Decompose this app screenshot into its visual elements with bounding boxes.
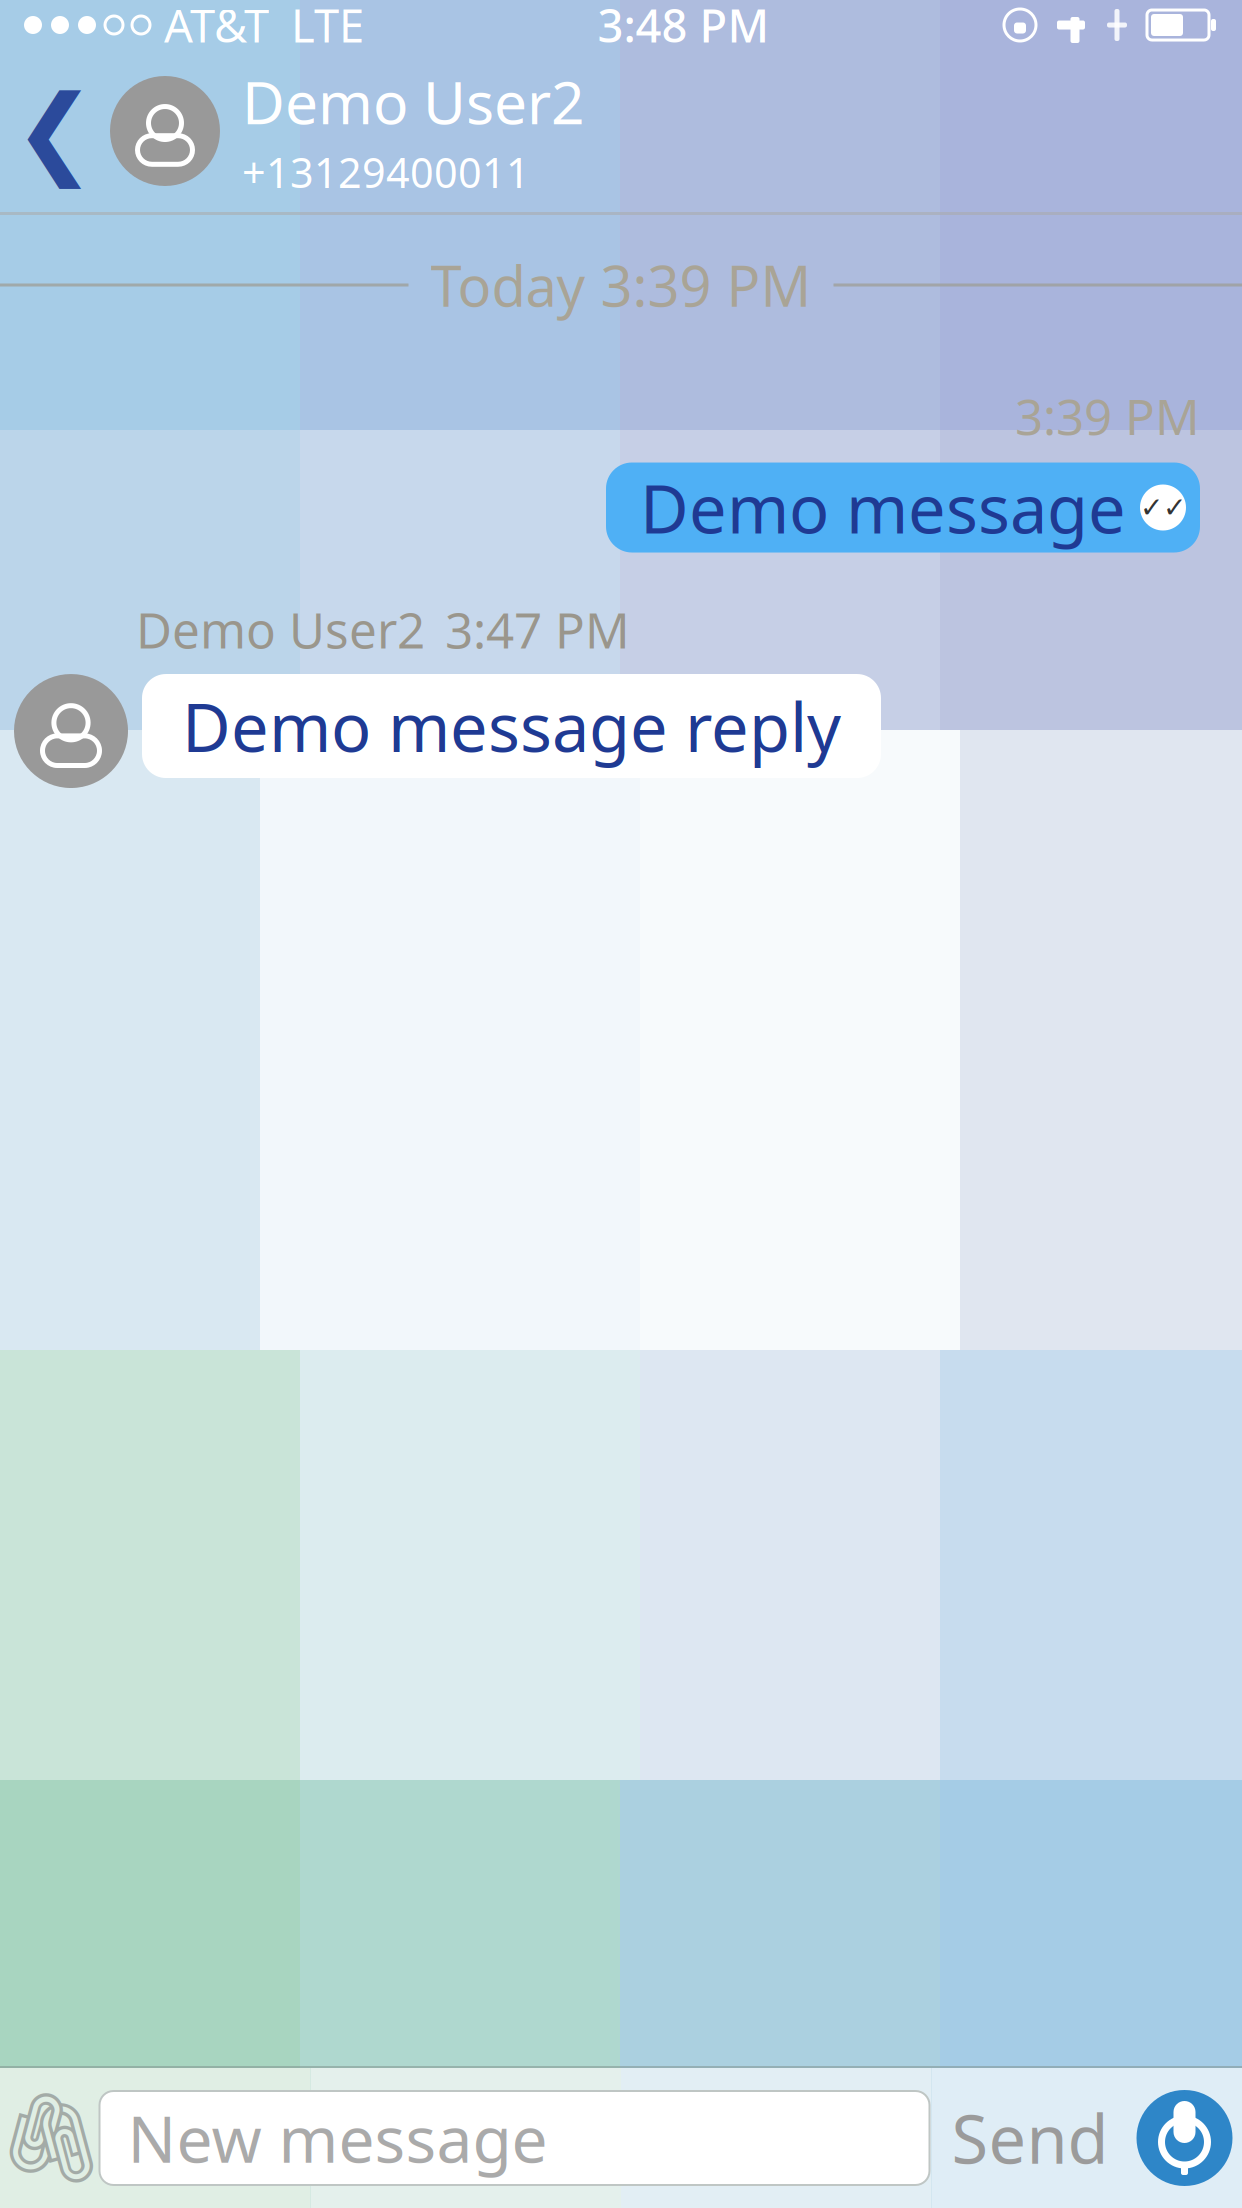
- staticText: Demo User2: [136, 596, 425, 662]
- button[interactable]: Demo message reply: [142, 674, 881, 778]
- staticText: Demo message reply: [182, 682, 841, 770]
- staticText: ❮: [13, 75, 96, 187]
- staticText: 3:47 PM: [445, 596, 630, 662]
- staticText: New message: [127, 2095, 547, 2180]
- button[interactable]: Demo message: [606, 462, 1200, 552]
- staticText: 🖇: [0, 2088, 107, 2188]
- staticText: Today 3:39 PM: [430, 248, 811, 322]
- staticText: 3:48 PM: [597, 0, 769, 55]
- staticText: LTE: [291, 0, 364, 55]
- staticText: +13129400011: [242, 144, 530, 199]
- staticText: Demo User2: [242, 63, 585, 140]
- staticText: 3:39 PM: [1015, 383, 1200, 448]
- button[interactable]: Send: [929, 2083, 1130, 2193]
- button[interactable]: Back: [0, 51, 110, 211]
- staticText: Send: [951, 2094, 1108, 2182]
- staticText: Demo message: [640, 463, 1126, 552]
- staticText: ✓✓: [1140, 492, 1186, 523]
- staticText: AT&T: [164, 0, 269, 55]
- button[interactable]: New message: [99, 2091, 929, 2185]
- button[interactable]: Attach: [3, 2083, 99, 2193]
- button[interactable]: Voice message: [1136, 2090, 1232, 2186]
- button[interactable]: Demo User2: [110, 63, 676, 199]
